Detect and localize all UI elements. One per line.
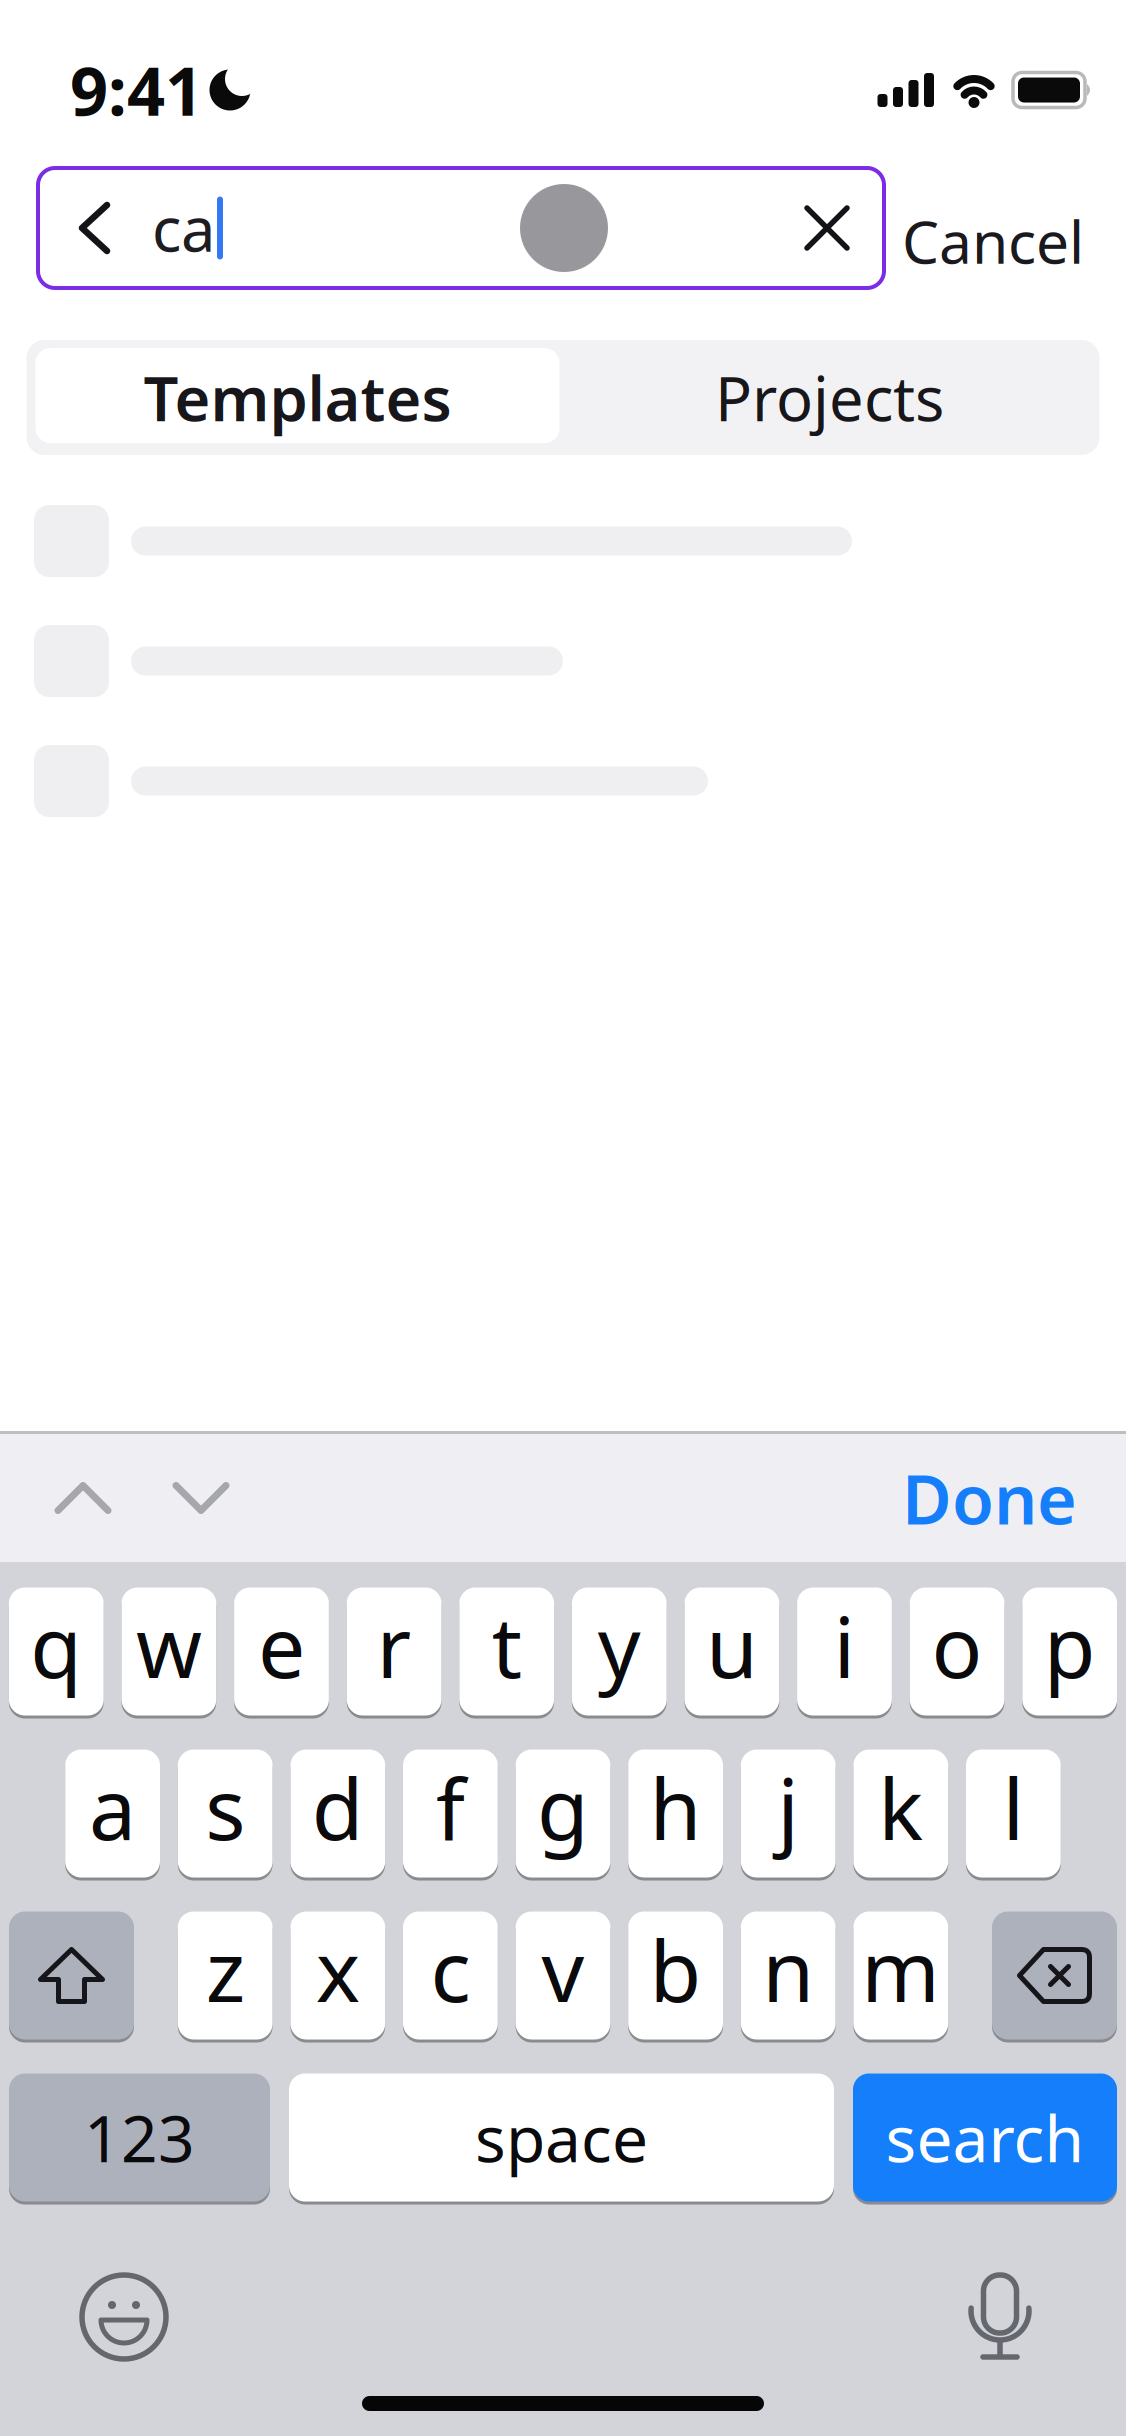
staticText: ca	[152, 187, 215, 269]
staticText: o	[932, 1590, 983, 1701]
staticText: p	[1044, 1590, 1096, 1701]
button[interactable]: k	[853, 1748, 948, 1879]
staticText: 9:41	[70, 46, 203, 134]
staticText: r	[377, 1590, 412, 1701]
button[interactable]: t	[459, 1586, 554, 1717]
button[interactable]: i	[797, 1586, 892, 1717]
button[interactable]: b	[628, 1910, 723, 2041]
button[interactable]	[9, 1910, 134, 2041]
button[interactable]: v	[516, 1910, 610, 2041]
button[interactable]: n	[741, 1910, 836, 2041]
staticText: z	[206, 1914, 245, 2025]
staticText: w	[136, 1590, 202, 1701]
staticText: j	[777, 1752, 799, 1863]
staticText: y	[598, 1590, 641, 1701]
button[interactable]: q	[9, 1586, 104, 1717]
button[interactable]: f	[403, 1748, 498, 1879]
staticText: i	[833, 1590, 855, 1701]
button[interactable]	[38, 202, 111, 254]
button[interactable]: o	[910, 1586, 1004, 1717]
button[interactable]: l	[966, 1748, 1061, 1879]
staticText: e	[258, 1590, 305, 1701]
button[interactable]	[960, 2273, 1040, 2361]
button[interactable]: g	[516, 1748, 610, 1879]
staticText: Cancel	[902, 202, 1084, 280]
staticText: k	[878, 1752, 923, 1863]
staticText: m	[861, 1914, 940, 2025]
staticText: g	[537, 1752, 589, 1863]
staticText: f	[436, 1752, 465, 1863]
staticText: u	[706, 1590, 758, 1701]
staticText: l	[1002, 1752, 1024, 1863]
button[interactable]: space	[289, 2072, 834, 2203]
staticText: Projects	[715, 357, 944, 438]
staticText: space	[475, 2095, 648, 2180]
button[interactable]: Templates	[26, 350, 559, 445]
button[interactable]: e	[234, 1586, 329, 1717]
button[interactable]	[55, 1481, 111, 1514]
staticText: s	[205, 1752, 245, 1863]
button[interactable]: z	[178, 1910, 273, 2041]
button[interactable]: a	[65, 1748, 160, 1879]
staticText: h	[650, 1752, 702, 1863]
staticText: q	[30, 1590, 82, 1701]
staticText: x	[316, 1914, 360, 2025]
button[interactable]: y	[572, 1586, 667, 1717]
staticText: Done	[902, 1453, 1077, 1543]
staticText: a	[89, 1752, 136, 1863]
staticText: 123	[84, 2095, 195, 2180]
staticText: search	[885, 2095, 1084, 2180]
button[interactable]	[81, 2274, 167, 2360]
button[interactable]: d	[290, 1748, 385, 1879]
button[interactable]	[805, 206, 884, 250]
button[interactable]: u	[684, 1586, 779, 1717]
button[interactable]: Done	[902, 1453, 1077, 1543]
staticText: c	[430, 1914, 470, 2025]
staticText: Templates	[143, 357, 451, 438]
staticText: b	[650, 1914, 702, 2025]
button[interactable]: r	[347, 1586, 441, 1717]
button[interactable]: h	[628, 1748, 723, 1879]
button[interactable]: 123	[9, 2072, 270, 2203]
button[interactable]: c	[403, 1910, 498, 2041]
staticText: t	[492, 1590, 522, 1701]
button[interactable]: Cancel	[902, 202, 1084, 280]
staticText: d	[312, 1752, 364, 1863]
button[interactable]: w	[121, 1586, 216, 1717]
staticText: n	[762, 1914, 814, 2025]
staticText: v	[541, 1914, 584, 2025]
button[interactable]: j	[741, 1748, 836, 1879]
button[interactable]: s	[178, 1748, 273, 1879]
button[interactable]: Projects	[26, 340, 1099, 455]
button[interactable]: m	[853, 1910, 948, 2041]
button[interactable]: x	[290, 1910, 385, 2041]
button[interactable]	[992, 1910, 1117, 2041]
button[interactable]: p	[1022, 1586, 1117, 1717]
button[interactable]	[111, 1481, 229, 1514]
button[interactable]: search	[853, 2072, 1117, 2203]
